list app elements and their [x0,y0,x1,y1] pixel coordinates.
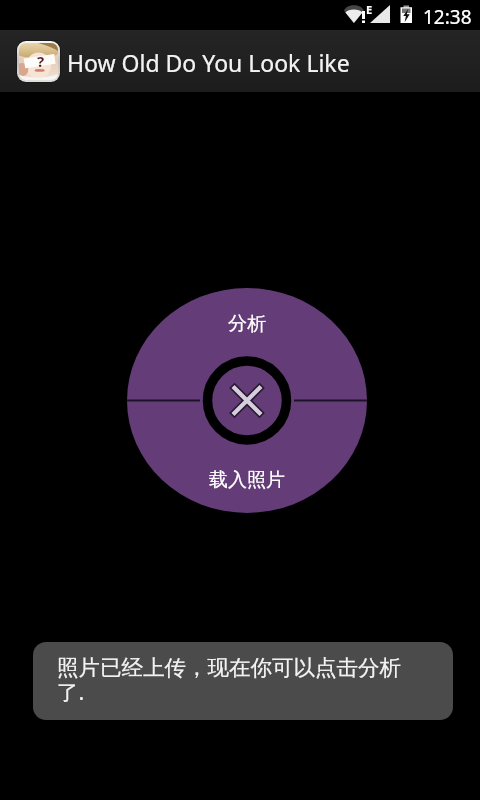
button[interactable]: 载入照片 [127,401,367,512]
button[interactable]: ? [0,30,362,92]
button[interactable]: 分析 [127,288,367,399]
staticText: 分析 [228,312,266,336]
staticText: 照片已经上传，现在你可以点击分析了. [57,654,405,706]
staticText: 载入照片 [209,468,285,492]
button[interactable]: Close menu [201,354,293,446]
staticText: 12:38 [423,4,472,30]
staticText: How Old Do You Look Like [67,47,350,78]
staticText: ? [37,51,45,71]
staticText: E [366,2,373,17]
